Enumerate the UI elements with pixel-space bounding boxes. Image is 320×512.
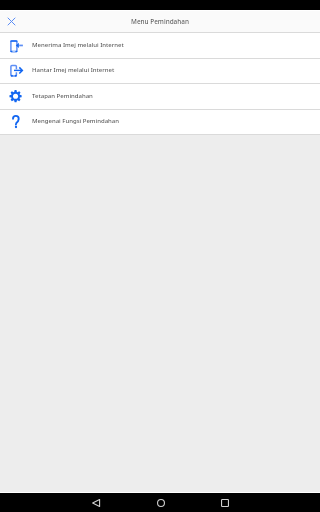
button[interactable]: Close [0,11,23,32]
staticText: Hantar Imej melalui Internet [32,66,115,74]
button[interactable]: Tetapan Pemindahan [0,84,320,110]
button[interactable]: Mengenai Fungsi Pemindahan [0,109,320,135]
button[interactable]: Recents [215,493,234,512]
staticText: Menerima Imej melalui Internet [32,41,124,49]
button[interactable]: Home [151,493,170,512]
staticText: Menu Pemindahan [131,17,189,26]
button[interactable]: Menerima Imej melalui Internet [0,33,320,59]
button[interactable]: Back [86,493,105,512]
staticText: Tetapan Pemindahan [32,92,93,100]
button[interactable]: Hantar Imej melalui Internet [0,58,320,84]
staticText: Mengenai Fungsi Pemindahan [32,117,120,125]
